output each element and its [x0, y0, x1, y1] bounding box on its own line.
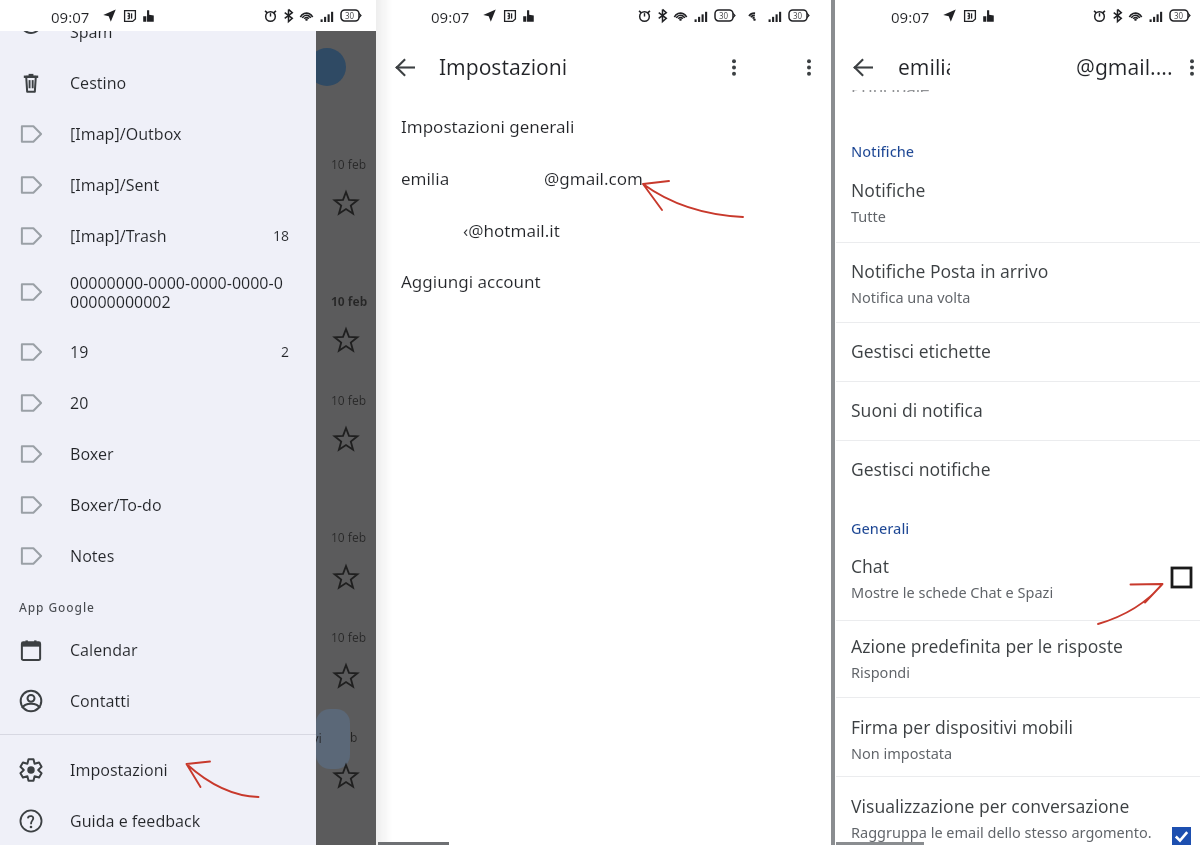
staticText: Chat	[851, 554, 890, 578]
button[interactable]: Impostazioni	[0, 744, 316, 795]
button[interactable]: 20	[0, 377, 316, 428]
button[interactable]: 00000000-0000-0000-0000-0 00000000002	[0, 259, 316, 325]
staticText: 30	[793, 10, 803, 21]
button[interactable]: ‹@hotmail.it	[376, 216, 833, 244]
staticText: Impostazioni	[439, 53, 568, 82]
button[interactable]: Azione predefinita per le risposte	[836, 634, 1200, 684]
button[interactable]: Visualizzazione per conversazione	[836, 794, 1200, 844]
button[interactable]: Checked	[1172, 827, 1191, 845]
staticText: Calendar	[70, 639, 138, 661]
button[interactable]: Suoni di notifica	[836, 398, 1200, 426]
button[interactable]: Gestisci etichette	[836, 339, 1200, 367]
button[interactable]: Notes	[0, 530, 316, 581]
button[interactable]: Chat	[836, 554, 1200, 604]
staticText: [Imap]/Sent	[70, 174, 160, 196]
staticText: Guida e feedback	[70, 810, 201, 832]
staticText: 10 feb	[331, 629, 367, 645]
staticText: 10 feb	[331, 392, 367, 408]
staticText: Notifiche	[851, 178, 926, 202]
staticText: Principale	[851, 90, 930, 92]
staticText: Azione predefinita per le risposte	[851, 634, 1123, 658]
staticText: Gestisci etichette	[851, 339, 991, 363]
button[interactable]: emiliana	[376, 164, 833, 192]
staticText: 19	[70, 341, 89, 363]
button[interactable]: Impostazioni generali	[376, 112, 833, 140]
staticText: Non impostata	[851, 743, 953, 763]
staticText: Tutte	[851, 206, 886, 226]
button[interactable]: Boxer	[0, 428, 316, 479]
staticText: Notifiche Posta in arrivo	[851, 259, 1049, 283]
staticText: Raggruppa le email dello stesso argoment…	[851, 822, 1152, 842]
staticText: Rispondi	[851, 662, 911, 682]
button[interactable]: Back	[844, 44, 882, 90]
staticText: Visualizzazione per conversazione	[851, 794, 1130, 818]
staticText: @gmail....	[1076, 53, 1173, 82]
staticText: [Imap]/Outbox	[70, 123, 182, 145]
staticText: Aggiungi account	[401, 270, 541, 293]
button[interactable]: [Imap]/Outbox	[0, 108, 316, 159]
button[interactable]: Cestino	[0, 57, 316, 108]
button[interactable]: [Imap]/Sent	[0, 159, 316, 210]
staticText: App Google	[19, 599, 95, 615]
staticText: 20	[70, 392, 89, 414]
button[interactable]: Aggiungi account	[376, 267, 833, 295]
staticText: Mostre le schede Chat e Spazi	[851, 582, 1054, 602]
staticText: 10 feb	[331, 529, 367, 545]
staticText: 30	[1174, 10, 1184, 21]
staticText: 09:07	[431, 7, 470, 27]
button[interactable]: Gestisci notifiche	[836, 457, 1200, 485]
staticText: 2	[281, 342, 290, 361]
staticText: Firma per dispositivi mobili	[851, 715, 1073, 739]
staticText: 09:07	[51, 7, 90, 27]
button[interactable]: Guida e feedback	[0, 795, 316, 845]
staticText: Gestisci notifiche	[851, 457, 991, 481]
staticText: 00000000-0000-0000-0000-0 00000000002	[70, 272, 283, 313]
staticText: emiliana	[401, 167, 470, 190]
staticText: emiliana	[898, 53, 983, 82]
button[interactable]: [Imap]/Trash	[0, 210, 316, 261]
staticText: 18	[273, 226, 290, 245]
staticText: 10 feb	[331, 156, 367, 172]
button[interactable]: More options	[716, 44, 752, 90]
staticText: @gmail.com	[544, 167, 643, 190]
staticText: Notes	[70, 545, 115, 567]
button[interactable]: Notifiche	[836, 178, 1200, 228]
staticText: 30	[719, 10, 729, 21]
staticText: Impostazioni	[70, 759, 168, 781]
button[interactable]: Calendar	[0, 624, 316, 675]
staticText: Spam	[70, 21, 113, 43]
button[interactable]: More options	[1174, 44, 1200, 90]
button[interactable]: Contatti	[0, 675, 316, 726]
staticText: vi	[312, 729, 322, 747]
staticText: Notifiche	[851, 141, 915, 161]
button[interactable]: Spam	[0, 6, 316, 57]
button[interactable]: Unchecked	[1172, 568, 1191, 587]
staticText: ‹@hotmail.it	[463, 219, 560, 242]
button[interactable]: Notifiche Posta in arrivo	[836, 259, 1200, 309]
staticText: b	[350, 729, 358, 745]
staticText: Notifica una volta	[851, 287, 971, 307]
staticText: [Imap]/Trash	[70, 225, 167, 247]
staticText: Contatti	[70, 690, 131, 712]
staticText: Suoni di notifica	[851, 398, 983, 422]
button[interactable]: 19	[0, 326, 316, 377]
button[interactable]: More options	[791, 44, 827, 90]
staticText: Cestino	[70, 72, 127, 94]
staticText: 30	[345, 10, 355, 21]
button[interactable]: Boxer/To-do	[0, 479, 316, 530]
button[interactable]: Firma per dispositivi mobili	[836, 715, 1200, 765]
button[interactable]: Back	[386, 44, 424, 90]
staticText: Boxer/To-do	[70, 494, 162, 516]
staticText: Impostazioni generali	[401, 115, 575, 138]
staticText: 10 feb	[331, 293, 368, 309]
staticText: 09:07	[891, 7, 930, 27]
staticText: Generali	[851, 518, 910, 538]
staticText: Boxer	[70, 443, 114, 465]
